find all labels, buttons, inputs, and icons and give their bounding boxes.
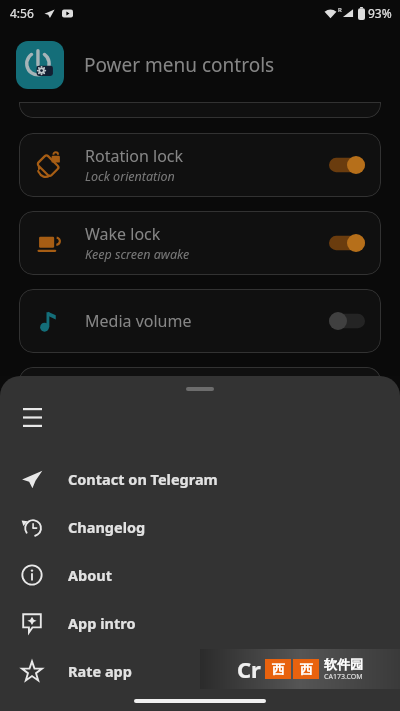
staticText: Media volume [85,310,192,332]
button[interactable]: Wake lock [19,211,381,275]
button[interactable]: On [329,156,365,174]
button[interactable]: On [329,234,365,252]
button[interactable]: Menu [14,399,50,435]
staticText: 软件园 [324,656,363,672]
staticText: 93% [368,5,392,21]
staticText: About [68,565,112,585]
button[interactable]: Media volume [19,289,381,353]
staticText: Lock orientation [85,168,175,185]
staticText: R [338,6,342,14]
staticText: 西 [300,661,313,677]
staticText: CA173.COM [324,672,363,682]
staticText: 4:56 [10,5,34,21]
staticText: Rate app [68,661,132,681]
staticText: App intro [68,613,136,633]
button[interactable]: App intro [0,599,400,647]
staticText: Contact on Telegram [68,469,218,489]
button[interactable]: Changelog [0,503,400,551]
staticText: Cr [237,654,261,684]
staticText: Keep screen awake [85,246,190,263]
button[interactable]: Contact on Telegram [0,455,400,503]
staticText: Wake lock [85,223,161,245]
staticText: Power menu controls [84,52,275,78]
button[interactable]: Off [329,312,365,330]
button[interactable]: About [0,551,400,599]
button[interactable]: Rate app [0,647,400,695]
staticText: Rotation lock [85,145,184,167]
staticText: Changelog [68,517,146,537]
staticText: 西 [272,661,285,677]
button[interactable]: Rotation lock [19,133,381,197]
